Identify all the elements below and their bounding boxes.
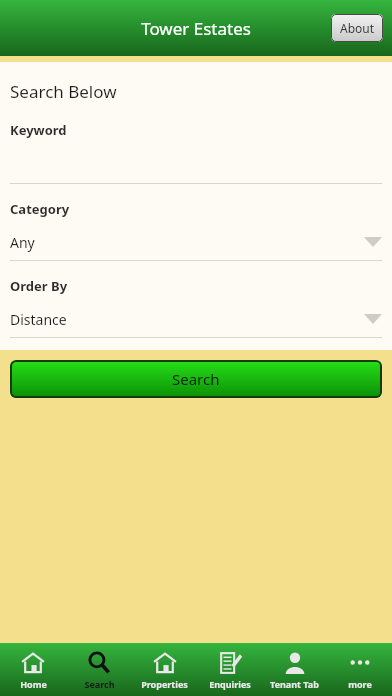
staticText: Distance bbox=[10, 310, 67, 329]
staticText: Keyword bbox=[10, 121, 67, 139]
button[interactable]: Enquiries bbox=[197, 643, 262, 696]
button[interactable]: Any bbox=[10, 232, 382, 252]
staticText: Any bbox=[10, 233, 35, 252]
staticText: Home bbox=[20, 678, 47, 690]
button[interactable]: Search bbox=[66, 643, 132, 696]
staticText: Order By bbox=[10, 277, 68, 295]
staticText: Enquiries bbox=[209, 678, 251, 690]
staticText: Search bbox=[84, 678, 115, 690]
staticText: Tenant Tab bbox=[270, 678, 319, 690]
button[interactable]: more bbox=[327, 643, 392, 696]
staticText: Search bbox=[172, 369, 220, 389]
staticText: Category bbox=[10, 200, 70, 218]
button[interactable]: Distance bbox=[10, 309, 382, 329]
staticText: Search Below bbox=[10, 80, 117, 103]
button[interactable]: Tenant Tab bbox=[262, 643, 327, 696]
button[interactable]: Search bbox=[10, 360, 382, 398]
staticText: About bbox=[340, 20, 375, 36]
button[interactable]: Home bbox=[0, 643, 66, 696]
button[interactable]: About bbox=[331, 14, 383, 42]
staticText: Tower Estates bbox=[141, 17, 251, 40]
staticText: Properties bbox=[141, 678, 188, 690]
staticText: more bbox=[348, 678, 372, 690]
button[interactable]: Properties bbox=[132, 643, 197, 696]
